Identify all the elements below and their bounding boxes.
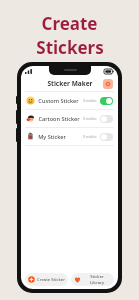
- button[interactable]: Enabled: [100, 97, 113, 105]
- button[interactable]: Custom Sticker: [21, 92, 118, 109]
- staticText: My Sticker: [38, 133, 66, 141]
- button[interactable]: Disabled: [100, 115, 113, 123]
- staticText: Create: [41, 12, 98, 35]
- button[interactable]: Cartoon Sticker: [21, 110, 118, 127]
- staticText: Sticker Maker: [47, 79, 93, 88]
- staticText: Enable: [83, 98, 97, 104]
- staticText: Enable: [83, 134, 97, 140]
- button[interactable]: Create Sticker: [25, 273, 68, 286]
- button[interactable]: Settings: [103, 79, 113, 89]
- staticText: Enable: [83, 116, 97, 122]
- staticText: Cartoon Sticker: [38, 115, 80, 123]
- button[interactable]: Sticker Library: [71, 273, 114, 286]
- staticText: Create Sticker: [37, 277, 65, 283]
- button[interactable]: Disabled: [100, 133, 113, 141]
- staticText: Sticker Library: [83, 274, 111, 286]
- staticText: Stickers: [36, 36, 104, 59]
- staticText: Custom Sticker: [38, 97, 79, 105]
- button[interactable]: My Sticker: [21, 128, 118, 145]
